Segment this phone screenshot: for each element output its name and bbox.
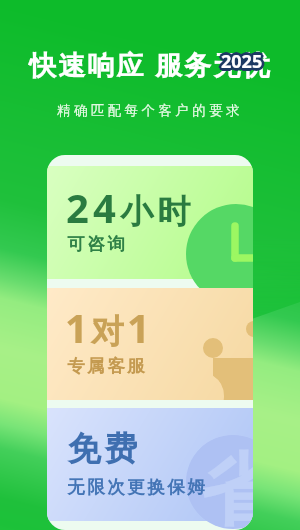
staticText: 专属客服 bbox=[66, 355, 146, 377]
staticText: 2025 bbox=[221, 51, 263, 76]
staticText: 2025 bbox=[219, 47, 261, 72]
staticText: 2025 bbox=[223, 47, 265, 72]
button[interactable]: 24小时 bbox=[47, 166, 253, 279]
staticText: 2025 bbox=[221, 52, 263, 77]
button[interactable]: 省 bbox=[47, 408, 253, 521]
staticText: 2025 bbox=[223, 48, 265, 73]
staticText: 快速响应 服务无忧 bbox=[29, 46, 272, 83]
staticText: 可咨询 bbox=[66, 233, 126, 255]
staticText: 2025 bbox=[221, 47, 263, 72]
staticText: 精确匹配每个客户的要求 bbox=[57, 102, 243, 119]
staticText: 2025 bbox=[219, 49, 261, 74]
staticText: 2025 bbox=[218, 49, 260, 74]
staticText: 免费 bbox=[66, 428, 139, 470]
staticText: 2025 bbox=[222, 48, 264, 73]
staticText: 2025 bbox=[219, 51, 261, 76]
staticText: 2025 bbox=[223, 50, 265, 75]
staticText: 2025 bbox=[221, 46, 263, 71]
staticText: 24小时 bbox=[66, 180, 195, 234]
staticText: 2025 bbox=[224, 49, 266, 74]
staticText: 2025 bbox=[222, 49, 264, 74]
staticText: 2025 bbox=[220, 49, 262, 74]
staticText: 2025 bbox=[220, 50, 262, 75]
other: 2025 bbox=[221, 49, 263, 74]
staticText: 2025 bbox=[222, 50, 264, 75]
staticText: 1对1 bbox=[65, 300, 153, 354]
staticText: 2025 bbox=[220, 51, 262, 76]
staticText: 2025 bbox=[221, 48, 263, 73]
staticText: 2025 bbox=[222, 51, 264, 76]
staticText: 省 bbox=[200, 442, 253, 530]
staticText: 2025 bbox=[222, 47, 264, 72]
staticText: 2025 bbox=[221, 50, 263, 75]
staticText: 2025 bbox=[220, 47, 262, 72]
staticText: 2025 bbox=[223, 51, 265, 76]
staticText: 2025 bbox=[219, 50, 261, 75]
staticText: 2025 bbox=[219, 48, 261, 73]
staticText: 2025 bbox=[221, 49, 263, 74]
staticText: 2025 bbox=[220, 48, 262, 73]
staticText: 无限次更换保姆 bbox=[66, 476, 206, 498]
button[interactable]: 1对1 bbox=[47, 288, 253, 400]
staticText: 2025 bbox=[223, 49, 265, 74]
